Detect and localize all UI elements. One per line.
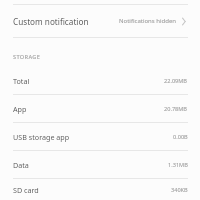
staticText: SD card: [13, 185, 39, 195]
button[interactable]: Custom notification: [0, 5, 200, 37]
staticText: Data: [13, 160, 29, 170]
staticText: Total: [13, 76, 30, 86]
staticText: 22.09MB: [164, 77, 188, 85]
staticText: STORAGE: [13, 53, 41, 61]
staticText: App: [13, 104, 27, 114]
button[interactable]: USB storage app: [0, 123, 200, 150]
staticText: Notifications hidden: [119, 17, 176, 25]
staticText: Custom notification: [13, 16, 89, 27]
button[interactable]: App: [0, 95, 200, 122]
button[interactable]: SD card: [0, 179, 200, 200]
button[interactable]: Data: [0, 151, 200, 178]
staticText: 1.31MB: [168, 161, 188, 169]
staticText: 340KB: [171, 186, 188, 194]
other: Open custom notification settings: [180, 16, 188, 27]
staticText: 0.00B: [173, 133, 188, 141]
staticText: USB storage app: [13, 132, 70, 142]
button[interactable]: Total: [0, 68, 200, 94]
staticText: 20.78MB: [164, 105, 188, 113]
